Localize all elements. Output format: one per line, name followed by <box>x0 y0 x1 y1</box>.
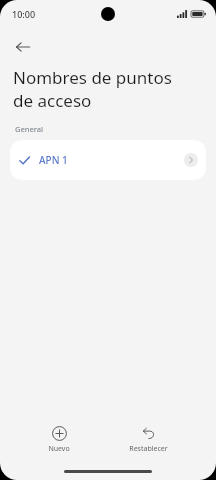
staticText: Nuevo <box>48 444 70 454</box>
staticText: Nombres de puntos de acceso <box>13 66 196 112</box>
staticText: Restablecer <box>129 444 168 454</box>
button[interactable]: Nuevo <box>38 423 80 457</box>
staticText: 10:00 <box>12 8 36 20</box>
staticText: General <box>15 124 44 134</box>
button[interactable]: Edit APN 1 <box>184 153 198 167</box>
button[interactable]: APN 1 <box>10 140 206 180</box>
button[interactable]: Restablecer <box>119 423 178 457</box>
staticText: APN 1 <box>39 153 68 167</box>
button[interactable]: Back <box>6 30 40 64</box>
